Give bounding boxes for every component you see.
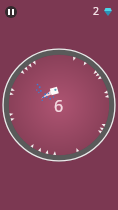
staticText: 6	[54, 95, 64, 117]
button[interactable]: Gems	[93, 4, 112, 18]
staticText: 2	[93, 4, 100, 18]
button[interactable]: Pause	[5, 6, 17, 18]
